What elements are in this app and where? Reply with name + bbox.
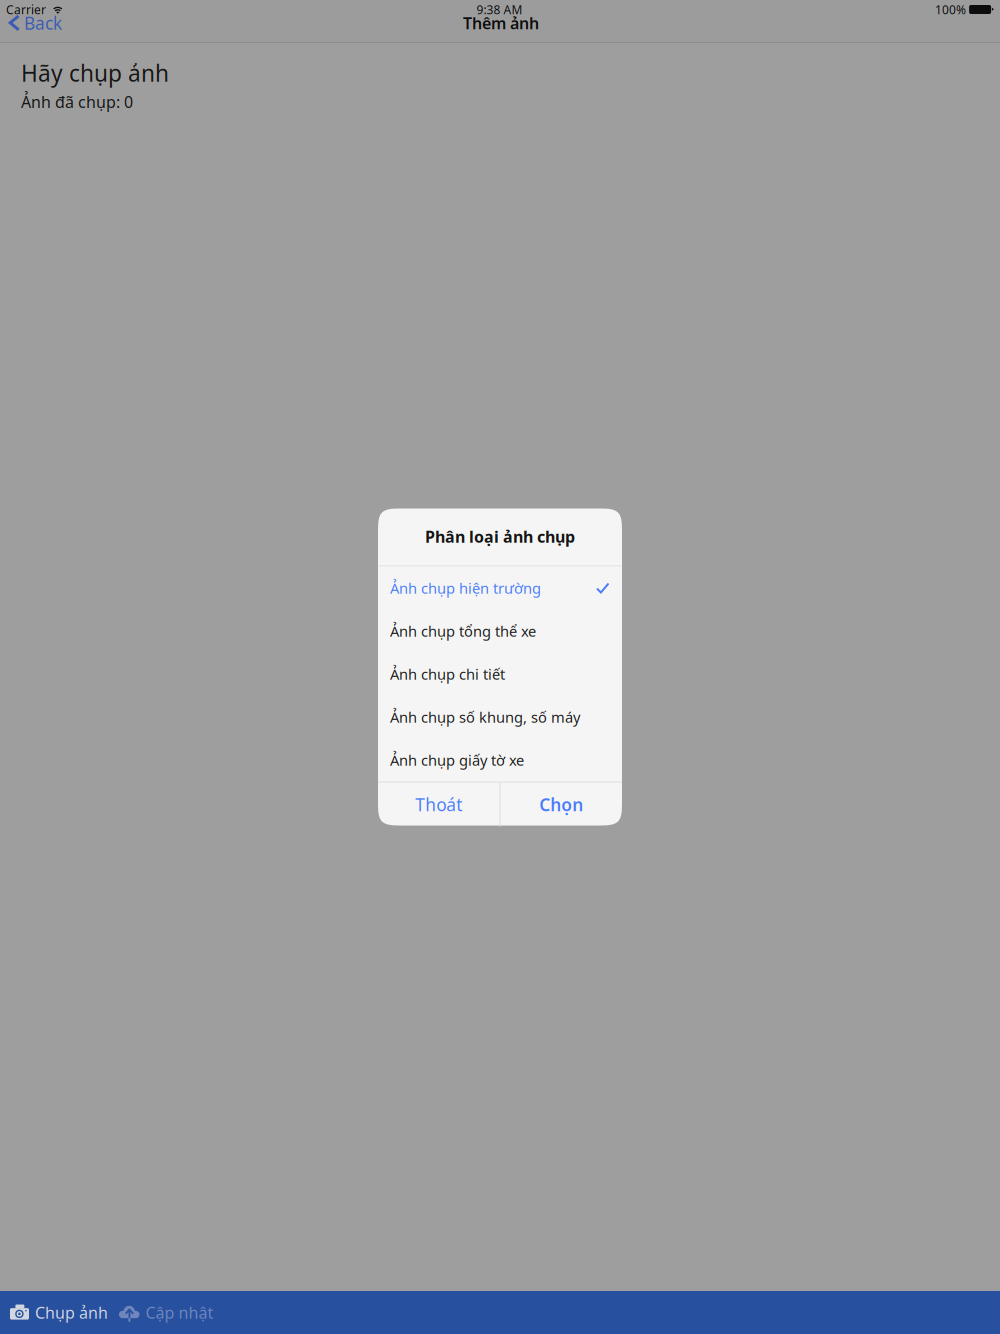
staticText: Carrier — [6, 1, 46, 17]
button[interactable]: Ảnh chụp hiện trường — [378, 566, 622, 609]
staticText: Ảnh chụp giấy tờ xe — [390, 750, 524, 770]
button[interactable]: Cập nhật — [115, 1291, 220, 1334]
staticText: Ảnh chụp số khung, số máy — [390, 707, 580, 727]
button[interactable]: Chọn — [500, 782, 622, 826]
button[interactable]: Thoát — [378, 782, 499, 826]
staticText: Hãy chụp ảnh — [21, 58, 169, 88]
button[interactable]: Ảnh chụp tổng thể xe — [378, 609, 622, 652]
staticText: Thêm ảnh — [463, 12, 539, 34]
staticText: 9:38 AM — [476, 1, 522, 17]
button[interactable]: Chụp ảnh — [0, 1291, 115, 1334]
button[interactable]: Back — [0, 14, 68, 32]
staticText: Ảnh chụp tổng thể xe — [390, 621, 536, 641]
button[interactable]: Ảnh chụp chi tiết — [378, 652, 622, 695]
staticText: Chụp ảnh — [35, 1302, 108, 1323]
staticText: Cập nhật — [145, 1302, 213, 1323]
staticText: Phân loại ảnh chụp — [425, 526, 575, 547]
staticText: Back — [24, 11, 62, 34]
staticText: Ảnh chụp chi tiết — [390, 664, 505, 684]
staticText: Thoát — [415, 793, 462, 816]
staticText: Chọn — [539, 793, 583, 816]
staticText: 100% — [935, 1, 966, 17]
button[interactable]: Ảnh chụp giấy tờ xe — [378, 738, 622, 781]
staticText: Ảnh đã chụp: 0 — [21, 91, 133, 112]
staticText: Ảnh chụp hiện trường — [390, 578, 541, 598]
button[interactable]: Ảnh chụp số khung, số máy — [378, 695, 622, 738]
